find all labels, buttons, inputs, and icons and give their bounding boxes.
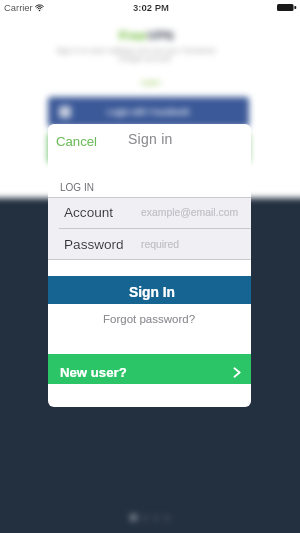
- staticText: Password: [64, 237, 124, 252]
- staticText: Login with Facebook: [107, 107, 190, 117]
- staticText: Free: [119, 28, 147, 43]
- staticText: Forgot password?: [103, 313, 196, 326]
- staticText: Cancel: [56, 134, 98, 149]
- other: New user: [233, 367, 241, 378]
- staticText: required: [141, 239, 180, 251]
- button[interactable]: New user?: [48, 354, 251, 384]
- staticText: Learn: [141, 78, 161, 86]
- button[interactable]: Password: [48, 229, 251, 260]
- button[interactable]: Sign In: [48, 276, 251, 304]
- staticText: Carrier: [4, 2, 33, 13]
- button[interactable]: Cancel: [48, 127, 106, 156]
- staticText: New user?: [60, 365, 127, 380]
- staticText: LOG IN: [60, 182, 94, 193]
- staticText: example@email.com: [141, 207, 239, 219]
- staticText: Account: [64, 205, 114, 220]
- button[interactable]: Account: [48, 197, 251, 228]
- staticText: Sign in to save settings and use your Fa…: [56, 46, 216, 54]
- staticText: 3:02 PM: [133, 2, 169, 13]
- staticText: Sign in: [128, 131, 173, 147]
- staticText: VPN: [147, 28, 174, 43]
- staticText: Sign In: [129, 285, 175, 300]
- button[interactable]: Forgot password?: [48, 304, 251, 354]
